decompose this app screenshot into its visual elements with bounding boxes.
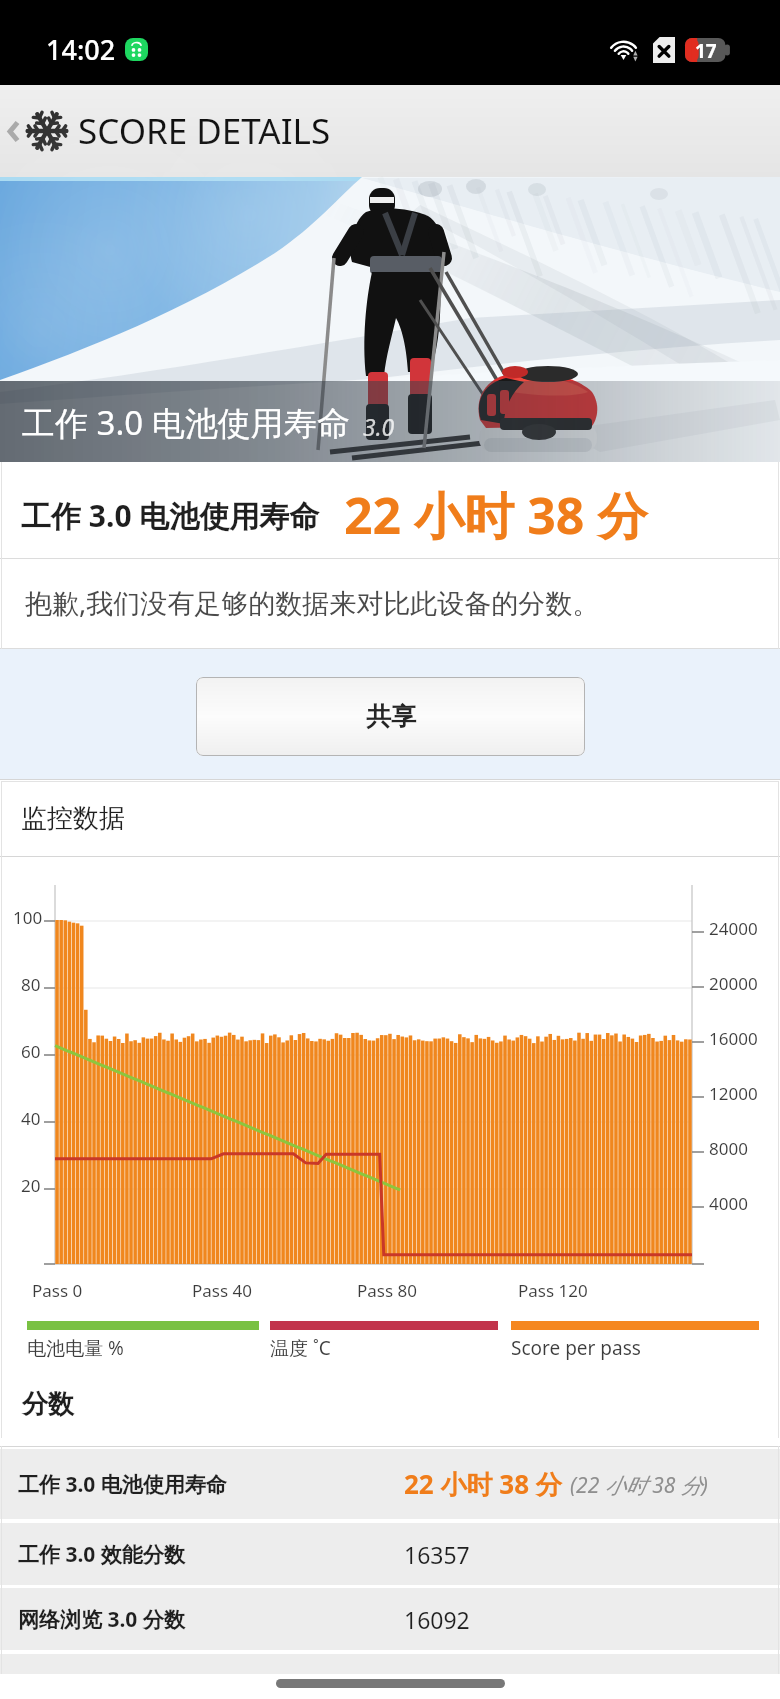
staticText: Pass 0	[32, 1279, 83, 1302]
staticText: Score per pass	[511, 1335, 641, 1361]
staticText: 14:02	[46, 31, 116, 68]
staticText: 60	[21, 1040, 41, 1063]
staticText: 80	[21, 973, 41, 996]
staticText: 22 小时 38 分	[344, 481, 648, 549]
staticText: 16092	[404, 1604, 470, 1635]
staticText: 22 小时 38 分	[404, 1466, 562, 1502]
staticText: 16357	[404, 1539, 470, 1570]
staticText: 100	[13, 906, 43, 929]
staticText: 分数	[22, 1388, 74, 1421]
staticText: 24000	[709, 917, 758, 940]
staticText: 4000	[709, 1192, 748, 1215]
staticText: Pass 120	[518, 1279, 588, 1302]
staticText: SCORE DETAILS	[78, 107, 331, 155]
button[interactable]: Share	[196, 677, 585, 756]
staticText: 温度 ˚C	[270, 1335, 331, 1361]
staticText: 16000	[709, 1027, 758, 1050]
staticText: 3.0	[363, 411, 395, 442]
staticText: 电池电量 %	[27, 1335, 124, 1361]
staticText: (22 小时 38 分)	[570, 1471, 708, 1500]
staticText: 17	[695, 38, 717, 62]
staticText: 12000	[709, 1082, 758, 1105]
staticText: 抱歉,我们没有足够的数据来对比此设备的分数。	[25, 584, 600, 621]
button[interactable]: 工作 3.0 效能分数	[0, 1523, 780, 1585]
staticText: 40	[21, 1107, 41, 1130]
staticText: 8000	[709, 1137, 748, 1160]
staticText: 网络浏览 3.0 分数	[18, 1605, 185, 1634]
staticText: 工作 3.0 电池使用寿命	[22, 400, 350, 445]
staticText: Pass 80	[357, 1279, 417, 1302]
staticText: 工作 3.0 电池使用寿命	[18, 1470, 227, 1499]
staticText: Pass 40	[192, 1279, 252, 1302]
staticText: 监控数据	[21, 802, 125, 835]
button[interactable]: Back to score details	[0, 85, 347, 177]
staticText: 工作 3.0 效能分数	[18, 1540, 185, 1569]
staticText: 共享	[366, 701, 416, 732]
button[interactable]: 工作 3.0 电池使用寿命	[0, 1449, 780, 1519]
staticText: 工作 3.0 电池使用寿命	[21, 495, 320, 536]
staticText: 20000	[709, 972, 758, 995]
staticText: 20	[21, 1174, 41, 1197]
button[interactable]: 网络浏览 3.0 分数	[0, 1588, 780, 1650]
